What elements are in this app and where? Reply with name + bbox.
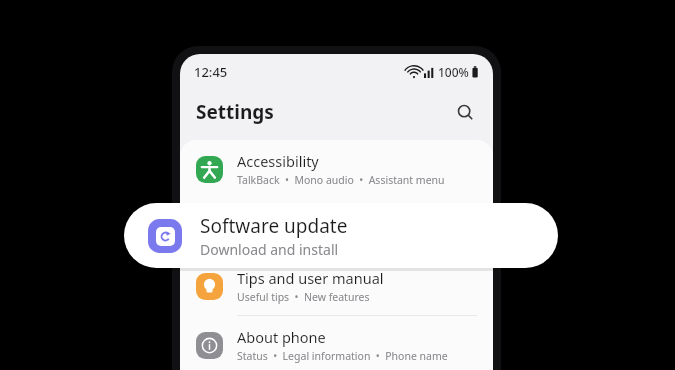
staticText: Download and install bbox=[200, 240, 339, 259]
staticText: About phone bbox=[237, 327, 326, 347]
staticText: Tips and user manual bbox=[237, 268, 384, 288]
staticText: TalkBack • Mono audio • Assistant menu bbox=[237, 173, 445, 187]
button[interactable]: Accessibility bbox=[180, 140, 493, 198]
staticText: Status • Legal information • Phone name bbox=[237, 349, 448, 363]
button[interactable]: Tips and user manual bbox=[180, 257, 493, 315]
staticText: 100% bbox=[438, 64, 469, 80]
staticText: Settings bbox=[196, 99, 274, 125]
staticText: Software update bbox=[200, 213, 348, 239]
button[interactable]: Software update bbox=[124, 203, 558, 268]
button[interactable]: Search bbox=[449, 96, 481, 128]
button[interactable]: About phone bbox=[180, 316, 493, 370]
staticText: Useful tips • New features bbox=[237, 290, 370, 304]
staticText: Accessibility bbox=[237, 151, 319, 171]
staticText: 12:45 bbox=[194, 63, 228, 81]
